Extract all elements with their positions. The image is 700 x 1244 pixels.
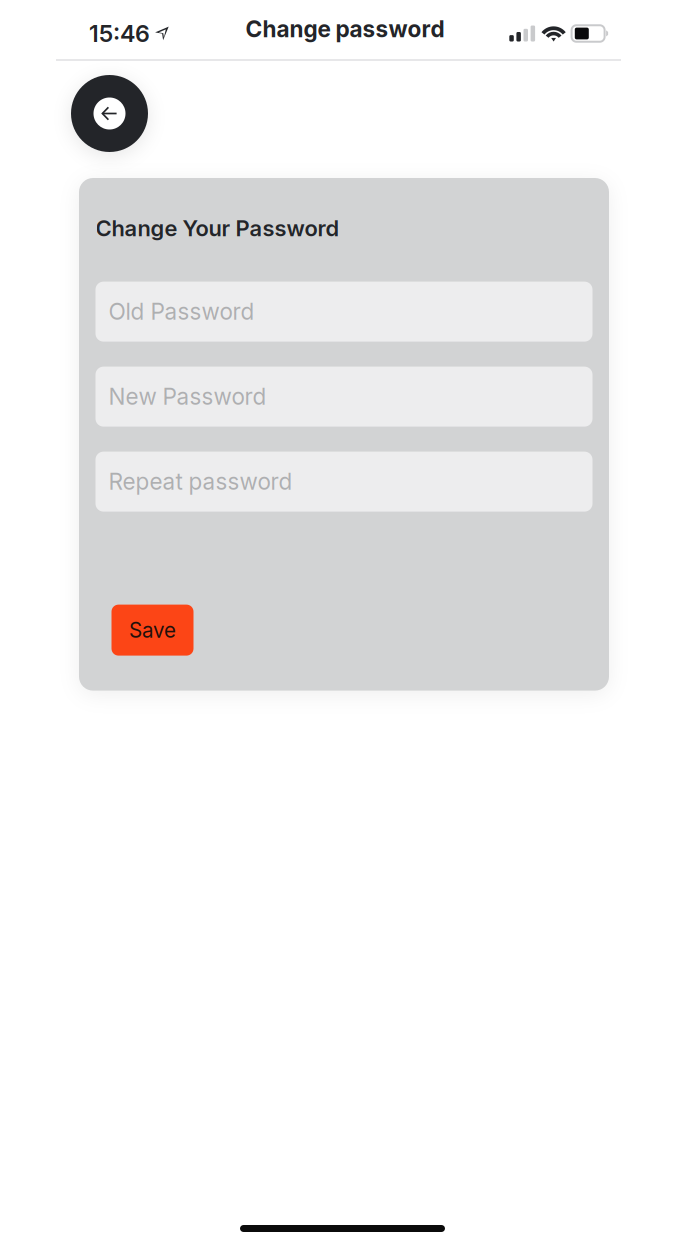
staticText: 15:46 <box>89 19 150 48</box>
button[interactable]: Old Password <box>95 282 592 342</box>
button[interactable]: Repeat password <box>95 452 592 512</box>
staticText: Save <box>129 618 176 643</box>
staticText: Old Password <box>108 298 254 325</box>
staticText: Repeat password <box>108 468 292 495</box>
button[interactable]: Save <box>111 605 193 656</box>
staticText: New Password <box>108 383 266 410</box>
button[interactable]: Back <box>71 75 148 152</box>
staticText: Change password <box>245 15 444 43</box>
staticText: Change Your Password <box>95 215 339 242</box>
button[interactable]: New Password <box>95 367 592 427</box>
